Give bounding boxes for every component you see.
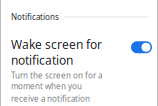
staticText: Notifications [11, 12, 59, 22]
staticText: Turn the screen on for a moment when you [11, 70, 102, 91]
staticText: Wake screen for notification [11, 36, 102, 68]
staticText: receive a notification [11, 93, 90, 104]
button[interactable]: Wake screen for notification [1, 33, 157, 106]
